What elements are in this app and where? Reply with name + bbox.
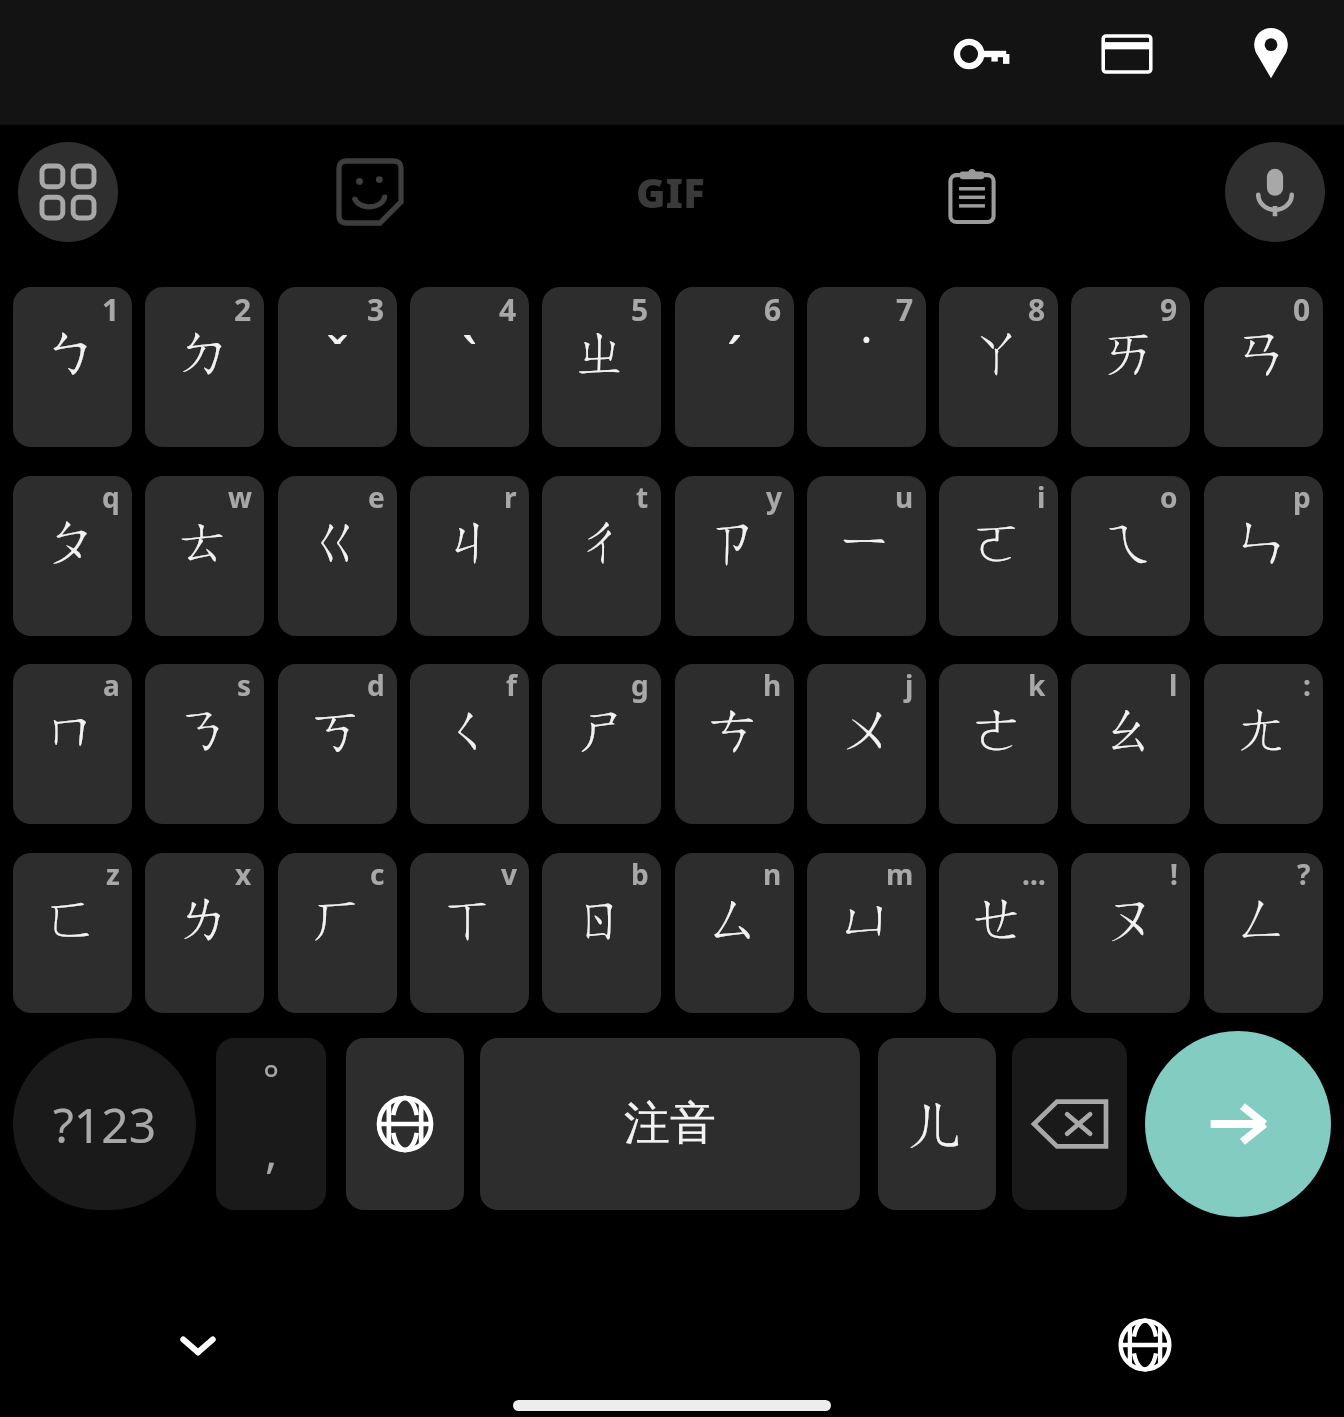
button[interactable]: GIF [620, 142, 720, 242]
button[interactable]: 9 [1071, 287, 1190, 447]
staticText: ㄖ [542, 885, 661, 953]
button[interactable]: a [13, 664, 132, 824]
button[interactable]: o [1071, 476, 1190, 636]
button[interactable]: ! [1071, 853, 1190, 1013]
staticText: ㄡ [1071, 885, 1190, 953]
button[interactable]: j [807, 664, 926, 824]
staticText: t [636, 478, 649, 516]
button[interactable]: Delete [1012, 1038, 1127, 1210]
button[interactable]: 3 [278, 287, 397, 447]
staticText: ㄦ [907, 1086, 968, 1162]
staticText: p [1293, 478, 1311, 516]
staticText: c [370, 855, 385, 893]
staticText: i [1037, 478, 1046, 516]
staticText: 9 [1160, 289, 1178, 330]
button[interactable]: c [278, 853, 397, 1013]
staticText: 注音 [624, 1095, 716, 1153]
staticText: ㄍ [278, 508, 397, 576]
staticText: j [905, 666, 914, 704]
button[interactable]: r [410, 476, 529, 636]
staticText: g [631, 666, 649, 704]
button[interactable]: Payment cards [1079, 6, 1175, 102]
button[interactable]: l [1071, 664, 1190, 824]
button[interactable]: ㄦ [878, 1038, 996, 1210]
button[interactable]: ° [216, 1038, 326, 1210]
staticText: e [368, 478, 385, 516]
staticText: ° [263, 1052, 280, 1104]
button[interactable]: k [939, 664, 1058, 824]
button[interactable]: m [807, 853, 926, 1013]
button[interactable]: f [410, 664, 529, 824]
button[interactable]: b [542, 853, 661, 1013]
staticText: ㄧ [807, 508, 926, 576]
button[interactable]: ?123 [13, 1038, 196, 1210]
staticText: 2 [234, 289, 252, 330]
button[interactable]: d [278, 664, 397, 824]
staticText: s [237, 666, 252, 704]
staticText: x [235, 855, 252, 893]
button[interactable]: Passwords [935, 6, 1031, 102]
button[interactable]: Hide keyboard [148, 1295, 248, 1395]
button[interactable]: h [675, 664, 794, 824]
button[interactable]: … [939, 853, 1058, 1013]
button[interactable]: p [1204, 476, 1323, 636]
staticText: ㄑ [410, 696, 529, 764]
button[interactable]: Switch input language [1095, 1295, 1195, 1395]
button[interactable]: w [145, 476, 264, 636]
staticText: ㄋ [145, 696, 264, 764]
button[interactable]: s [145, 664, 264, 824]
staticText: ㄈ [13, 885, 132, 953]
staticText: ㄜ [939, 696, 1058, 764]
button[interactable]: : [1204, 664, 1323, 824]
button[interactable]: Keyboard options [18, 142, 118, 242]
button[interactable]: Voice input [1225, 142, 1325, 242]
staticText: … [1022, 855, 1046, 893]
button[interactable]: 4 [410, 287, 529, 447]
button[interactable]: 6 [675, 287, 794, 447]
button[interactable]: i [939, 476, 1058, 636]
button[interactable]: u [807, 476, 926, 636]
button[interactable]: Change keyboard language [346, 1038, 464, 1210]
button[interactable]: 0 [1204, 287, 1323, 447]
staticText: ㄛ [939, 508, 1058, 576]
button[interactable]: q [13, 476, 132, 636]
button[interactable]: 1 [13, 287, 132, 447]
button[interactable]: 7 [807, 287, 926, 447]
staticText: ?123 [53, 1092, 157, 1157]
staticText: f [506, 666, 517, 704]
staticText: ㄨ [807, 696, 926, 764]
button[interactable]: Stickers [320, 142, 420, 242]
button[interactable]: t [542, 476, 661, 636]
button[interactable]: n [675, 853, 794, 1013]
staticText: 0 [1293, 289, 1311, 330]
staticText: ㄔ [542, 508, 661, 576]
button[interactable]: x [145, 853, 264, 1013]
button[interactable]: v [410, 853, 529, 1013]
staticText: ㄇ [13, 696, 132, 764]
button[interactable]: e [278, 476, 397, 636]
button[interactable]: 2 [145, 287, 264, 447]
staticText: ㄝ [939, 885, 1058, 953]
staticText: ˊ [675, 319, 794, 393]
staticText: 5 [631, 289, 649, 330]
button[interactable]: y [675, 476, 794, 636]
staticText: ㄢ [1204, 319, 1323, 387]
button[interactable]: 5 [542, 287, 661, 447]
button[interactable]: Addresses [1223, 6, 1319, 102]
button[interactable]: z [13, 853, 132, 1013]
button[interactable]: 8 [939, 287, 1058, 447]
staticText: GIF [636, 165, 705, 219]
staticText: ㄕ [542, 696, 661, 764]
staticText: : [1303, 666, 1311, 704]
button[interactable]: 注音 [480, 1038, 860, 1210]
button[interactable]: ? [1204, 853, 1323, 1013]
staticText: ㄚ [939, 319, 1058, 387]
staticText: ㄤ [1204, 696, 1323, 764]
button[interactable]: Clipboard [922, 142, 1022, 242]
button[interactable]: g [542, 664, 661, 824]
button[interactable]: Enter [1145, 1031, 1331, 1217]
staticText: ㄉ [145, 319, 264, 387]
staticText: h [763, 666, 782, 704]
staticText: r [504, 478, 517, 516]
staticText: a [103, 666, 120, 704]
